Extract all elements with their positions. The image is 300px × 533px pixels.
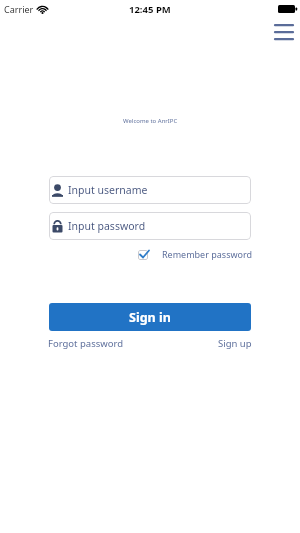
button[interactable]: Input password — [49, 212, 251, 240]
staticText: Input password — [68, 219, 146, 233]
staticText: Carrier — [4, 3, 34, 15]
staticText: Remember password — [162, 248, 253, 260]
staticText: 12:45 PM — [129, 3, 171, 16]
button[interactable]: Sign up — [218, 337, 252, 350]
button[interactable]: Sign in — [49, 303, 251, 331]
staticText: Input username — [68, 183, 148, 197]
button[interactable] — [272, 22, 296, 42]
staticText: Welcome to AnrIPC — [123, 117, 178, 125]
button[interactable]: Input username — [49, 176, 251, 204]
staticText: Sign in — [129, 309, 171, 326]
button[interactable]: Remember password — [47, 248, 253, 260]
button[interactable]: Forgot password — [48, 337, 124, 350]
